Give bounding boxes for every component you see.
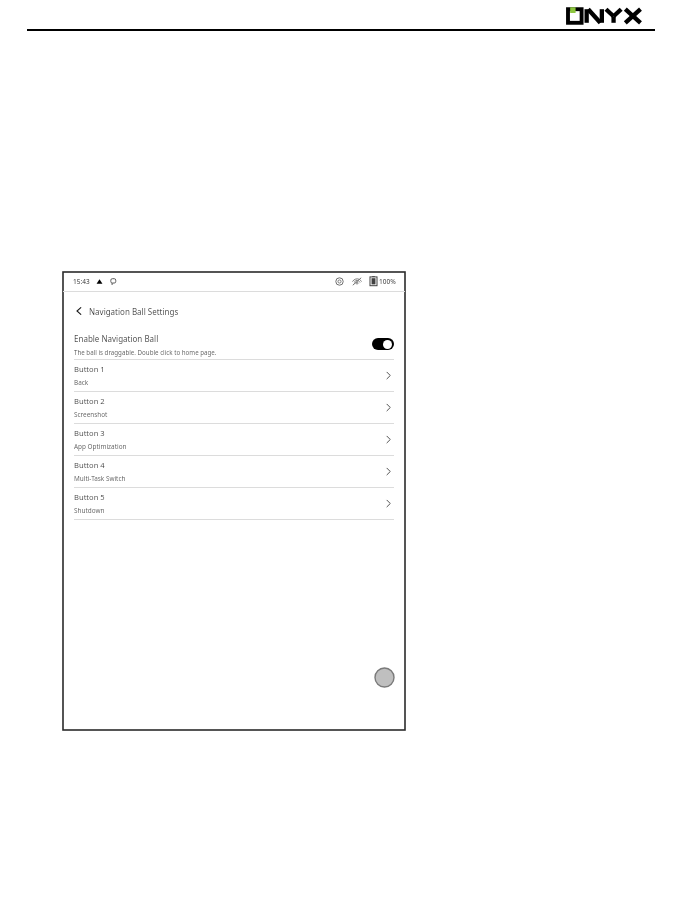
staticText: Screenshot	[74, 410, 108, 419]
button[interactable]: Button 5	[74, 488, 394, 519]
staticText: Shutdown	[74, 506, 105, 515]
staticText: Multi-Task Switch	[74, 474, 126, 483]
button[interactable]: Button 1	[74, 360, 394, 391]
other: Back	[74, 306, 84, 316]
staticText: 100%	[379, 277, 396, 286]
staticText: App Optimization	[74, 442, 127, 451]
staticText: Button 4	[74, 460, 105, 470]
other: Open Button 5	[383, 498, 394, 509]
staticText: 15:43	[73, 277, 90, 286]
staticText: The ball is draggable. Double click to h…	[74, 348, 217, 356]
button[interactable]: Enable Navigation Ball toggle	[372, 338, 394, 350]
staticText: Navigation Ball Settings	[89, 306, 179, 317]
button[interactable]: Button 4	[74, 456, 394, 487]
button[interactable]: Button 2	[74, 392, 394, 423]
button[interactable]: Enable Navigation Ball	[74, 329, 394, 359]
staticText: Enable Navigation Ball	[74, 333, 159, 344]
button[interactable]: Navigation ball	[374, 667, 395, 688]
staticText: Button 3	[74, 428, 105, 438]
staticText: Back	[74, 378, 89, 387]
button[interactable]: Button 3	[74, 424, 394, 455]
button[interactable]: Back	[74, 303, 405, 319]
other: Open Button 1	[383, 370, 394, 381]
other: Open Button 2	[383, 402, 394, 413]
staticText: Button 5	[74, 492, 105, 502]
other: Open Button 3	[383, 434, 394, 445]
other: Open Button 4	[383, 466, 394, 477]
staticText: Button 1	[74, 364, 105, 374]
staticText: Button 2	[74, 396, 105, 406]
